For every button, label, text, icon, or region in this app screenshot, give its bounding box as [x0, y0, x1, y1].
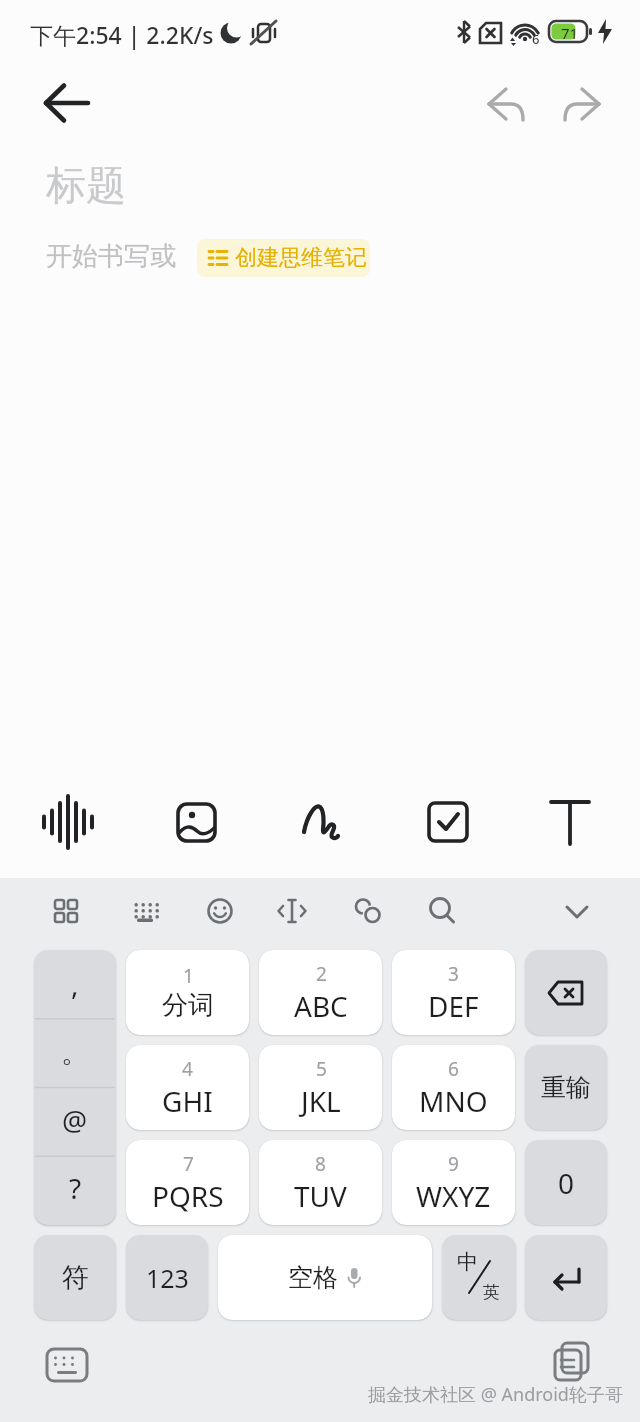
button[interactable]: 0 [525, 1140, 607, 1225]
staticText: 123 [146, 1261, 189, 1295]
staticText: 7 [183, 1151, 194, 1177]
staticText: ABC [294, 987, 348, 1025]
button[interactable] [525, 1235, 607, 1320]
staticText: 4 [182, 1056, 193, 1082]
button[interactable]: 6 [392, 1045, 515, 1130]
button[interactable]: @ [34, 1086, 116, 1154]
button[interactable] [166, 792, 226, 852]
staticText: 创建思维笔记 [235, 244, 367, 272]
staticText: 1 [183, 963, 194, 989]
staticText: 9 [448, 1151, 459, 1177]
button[interactable]: 3 [392, 950, 515, 1035]
staticText: 0 [558, 1164, 575, 1202]
staticText: 分词 [162, 989, 214, 1022]
staticText: 中 [457, 1249, 478, 1275]
staticText: 英 [483, 1282, 500, 1303]
staticText: @ [62, 1101, 88, 1139]
button[interactable]: ? [34, 1154, 116, 1222]
button[interactable]: 中 [442, 1235, 516, 1320]
staticText: 重输 [541, 1072, 591, 1103]
staticText: 6 [448, 1056, 459, 1082]
button[interactable] [40, 1340, 94, 1392]
button[interactable] [34, 78, 98, 130]
button[interactable]: 重输 [525, 1045, 607, 1130]
staticText: PQRS [152, 1177, 224, 1215]
button[interactable]: 符 [34, 1235, 116, 1320]
staticText: ? [69, 1169, 82, 1207]
button[interactable] [420, 889, 464, 933]
button[interactable]: 1 [126, 950, 249, 1035]
button[interactable] [525, 950, 607, 1035]
button[interactable]: 创建思维笔记 [197, 239, 370, 277]
staticText: 空格 [288, 1262, 338, 1293]
button[interactable]: 123 [126, 1235, 208, 1320]
staticText: 6 [532, 30, 540, 48]
button[interactable]: 5 [259, 1045, 382, 1130]
staticText: 5 [316, 1056, 327, 1082]
button[interactable]: 9 [392, 1140, 515, 1225]
button[interactable] [346, 889, 390, 933]
button[interactable]: 。 [34, 1018, 116, 1086]
button[interactable] [198, 889, 242, 933]
staticText: 71 [561, 23, 579, 43]
button[interactable] [38, 792, 98, 852]
button[interactable] [292, 792, 352, 852]
button[interactable]: 空格 [218, 1235, 432, 1320]
staticText: 2 [316, 961, 327, 987]
staticText: 掘金技术社区 @ Android轮子哥 [368, 1382, 623, 1407]
staticText: TUV [294, 1177, 347, 1215]
staticText: 符 [62, 1261, 89, 1295]
button[interactable]: 4 [126, 1045, 249, 1130]
staticText: 开始书写或 [46, 240, 176, 273]
button[interactable] [546, 1336, 600, 1390]
staticText: 8 [315, 1151, 326, 1177]
button[interactable]: 7 [126, 1140, 249, 1225]
button[interactable] [123, 889, 167, 933]
button[interactable] [540, 792, 600, 852]
button[interactable] [480, 80, 532, 128]
staticText: JKL [301, 1082, 341, 1120]
button[interactable] [44, 889, 88, 933]
button[interactable]: , [34, 950, 116, 1018]
staticText: 标题 [46, 160, 126, 210]
staticText: MNO [419, 1082, 488, 1120]
staticText: 下午2:54 | 2.2K/s [30, 19, 214, 50]
button[interactable] [555, 889, 599, 933]
staticText: 。 [61, 1035, 89, 1070]
staticText: 3 [448, 961, 459, 987]
staticText: GHI [162, 1082, 213, 1120]
button[interactable] [270, 889, 314, 933]
staticText: , [71, 965, 79, 1003]
button[interactable]: 2 [259, 950, 382, 1035]
button[interactable]: 8 [259, 1140, 382, 1225]
staticText: DEF [428, 987, 479, 1025]
button[interactable] [418, 792, 478, 852]
staticText: WXYZ [416, 1177, 491, 1215]
button[interactable] [556, 80, 608, 128]
